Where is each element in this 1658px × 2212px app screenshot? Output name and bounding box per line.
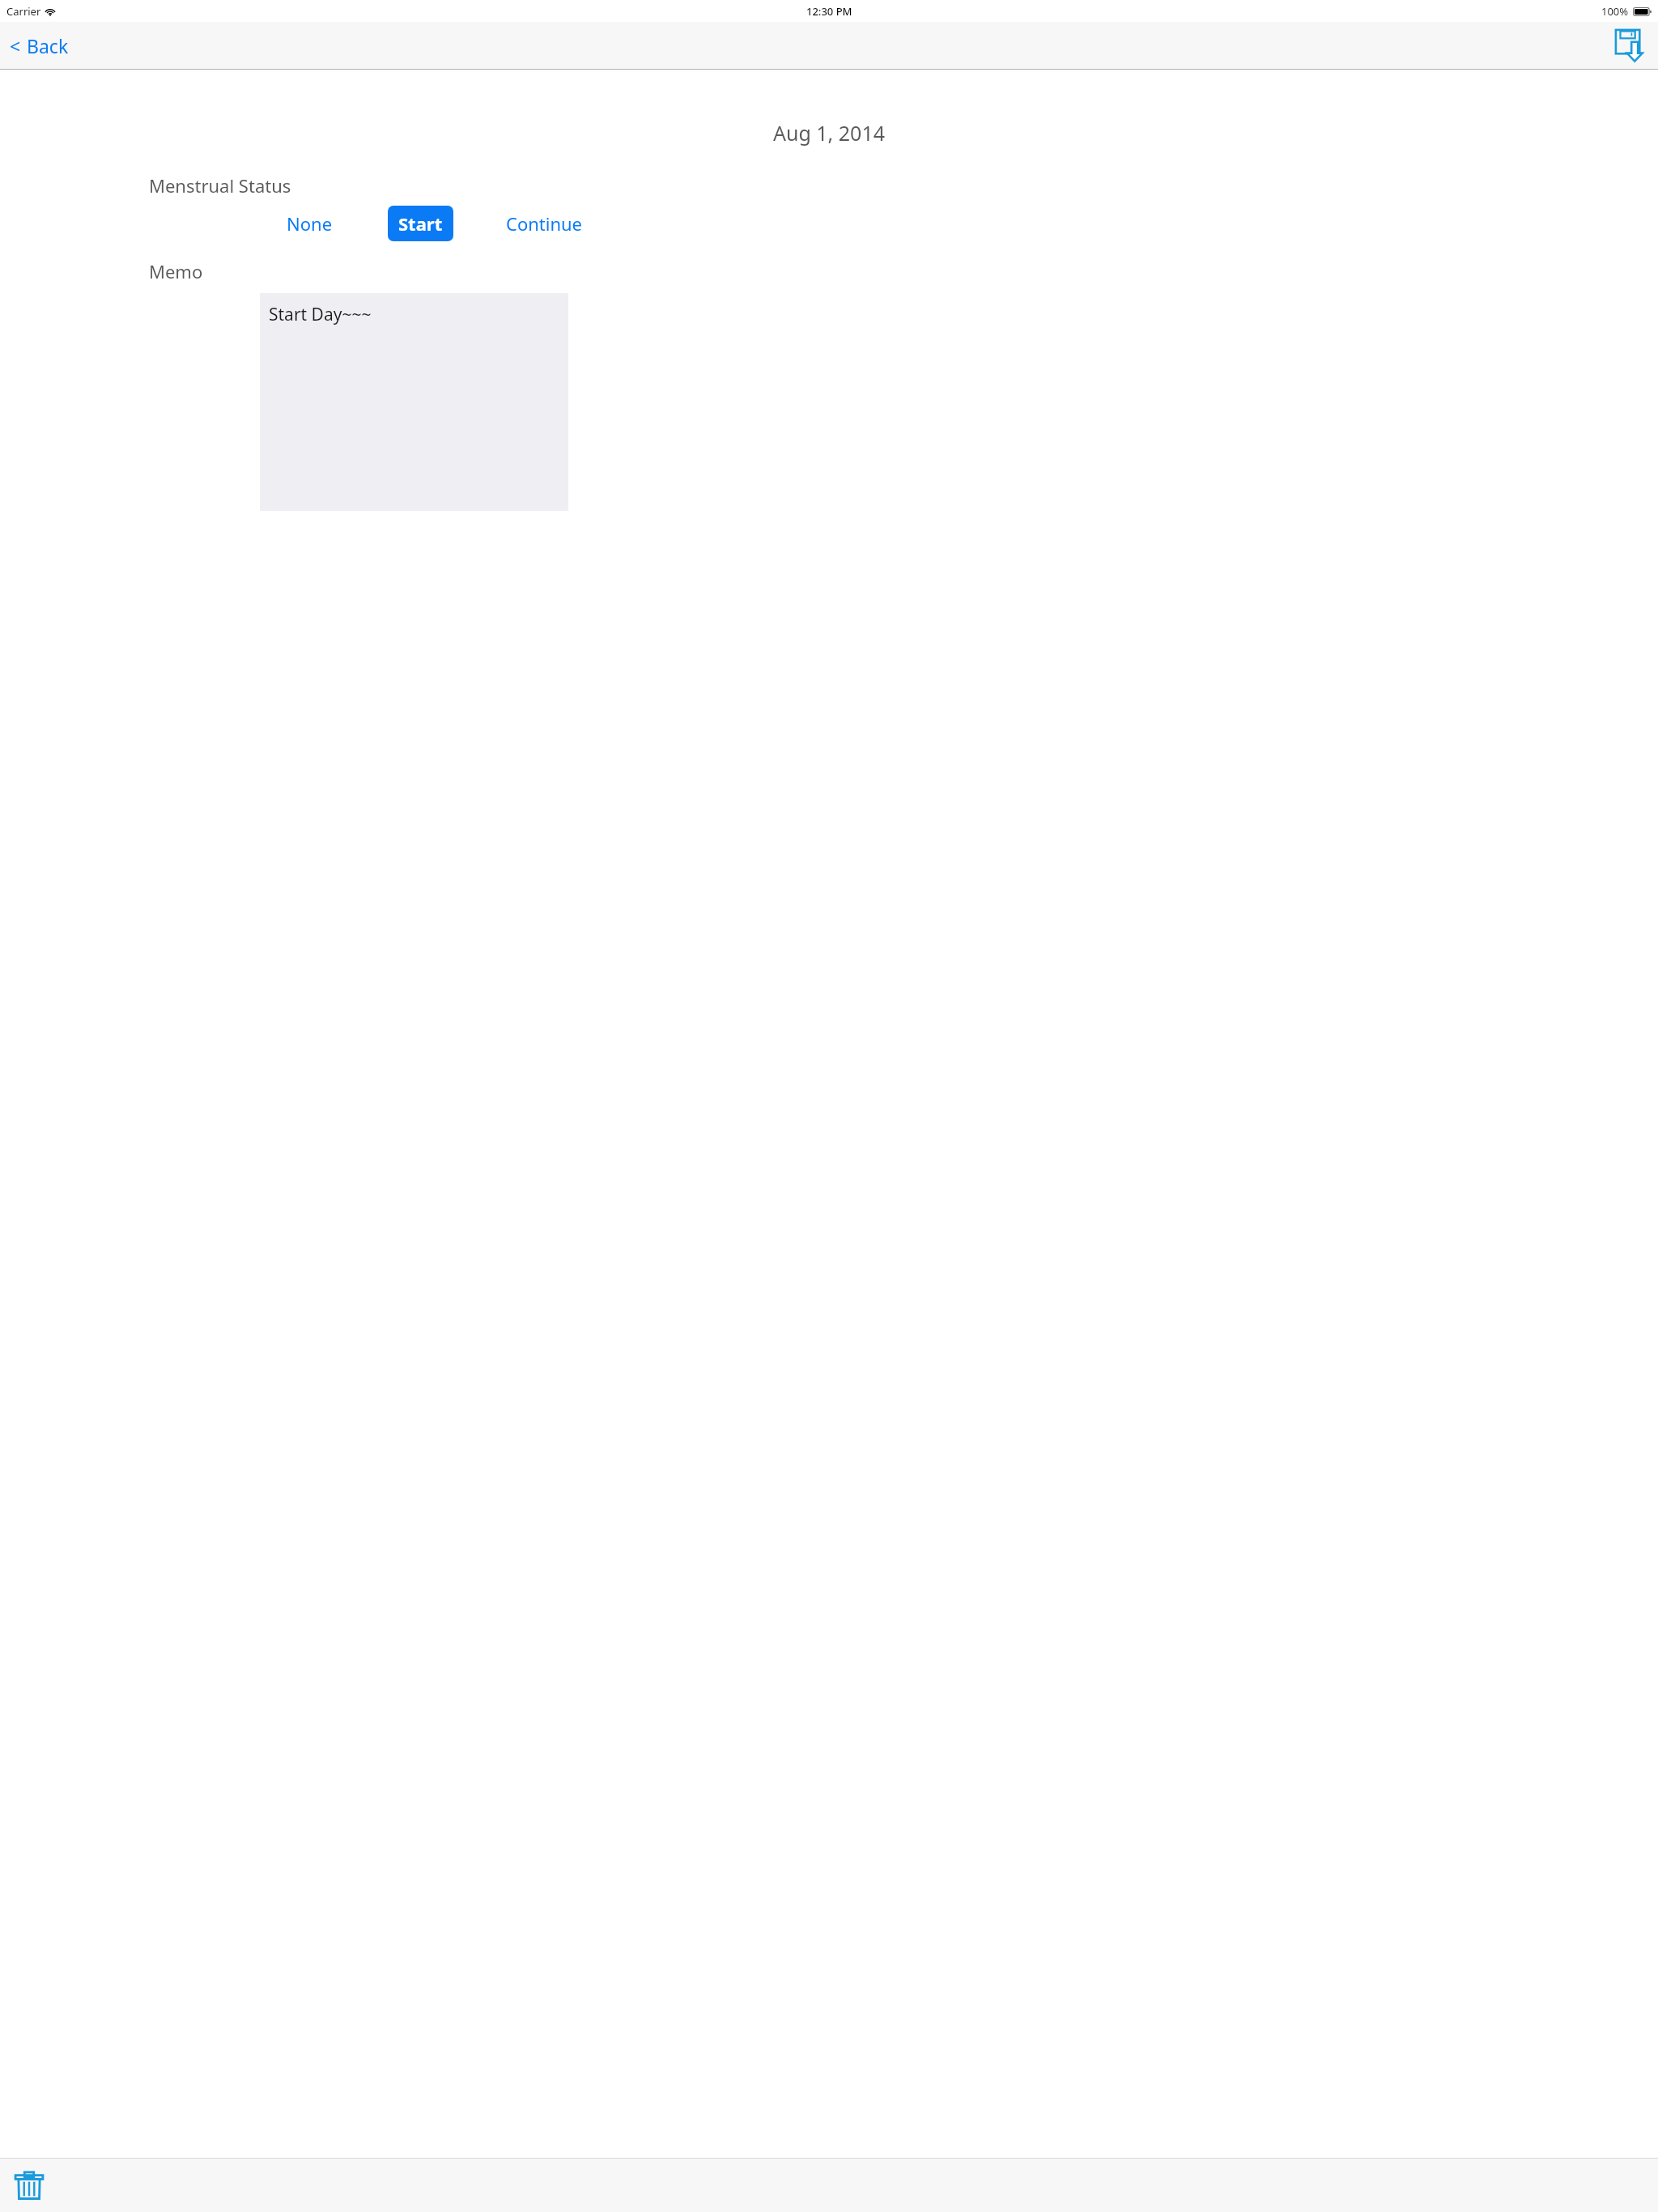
- button[interactable]: <: [5, 28, 74, 63]
- staticText: 12:30 PM: [806, 4, 852, 19]
- staticText: 100%: [1601, 4, 1629, 19]
- staticText: Continue: [506, 211, 583, 236]
- staticText: <: [10, 33, 21, 58]
- button[interactable]: Start Day~~~: [260, 293, 568, 511]
- staticText: Menstrual Status: [149, 173, 291, 198]
- button[interactable]: Start: [388, 206, 453, 241]
- staticText: Carrier: [6, 4, 41, 19]
- staticText: Aug 1, 2014: [0, 119, 1658, 147]
- staticText: Memo: [149, 259, 203, 283]
- staticText: Start: [398, 211, 443, 236]
- button[interactable]: None: [278, 206, 342, 241]
- staticText: Back: [27, 33, 69, 58]
- button[interactable]: Continue: [497, 206, 592, 241]
- button[interactable]: Save: [1610, 24, 1652, 66]
- staticText: Start Day~~~: [269, 303, 372, 326]
- staticText: None: [287, 211, 333, 236]
- button[interactable]: Delete: [8, 2164, 50, 2206]
